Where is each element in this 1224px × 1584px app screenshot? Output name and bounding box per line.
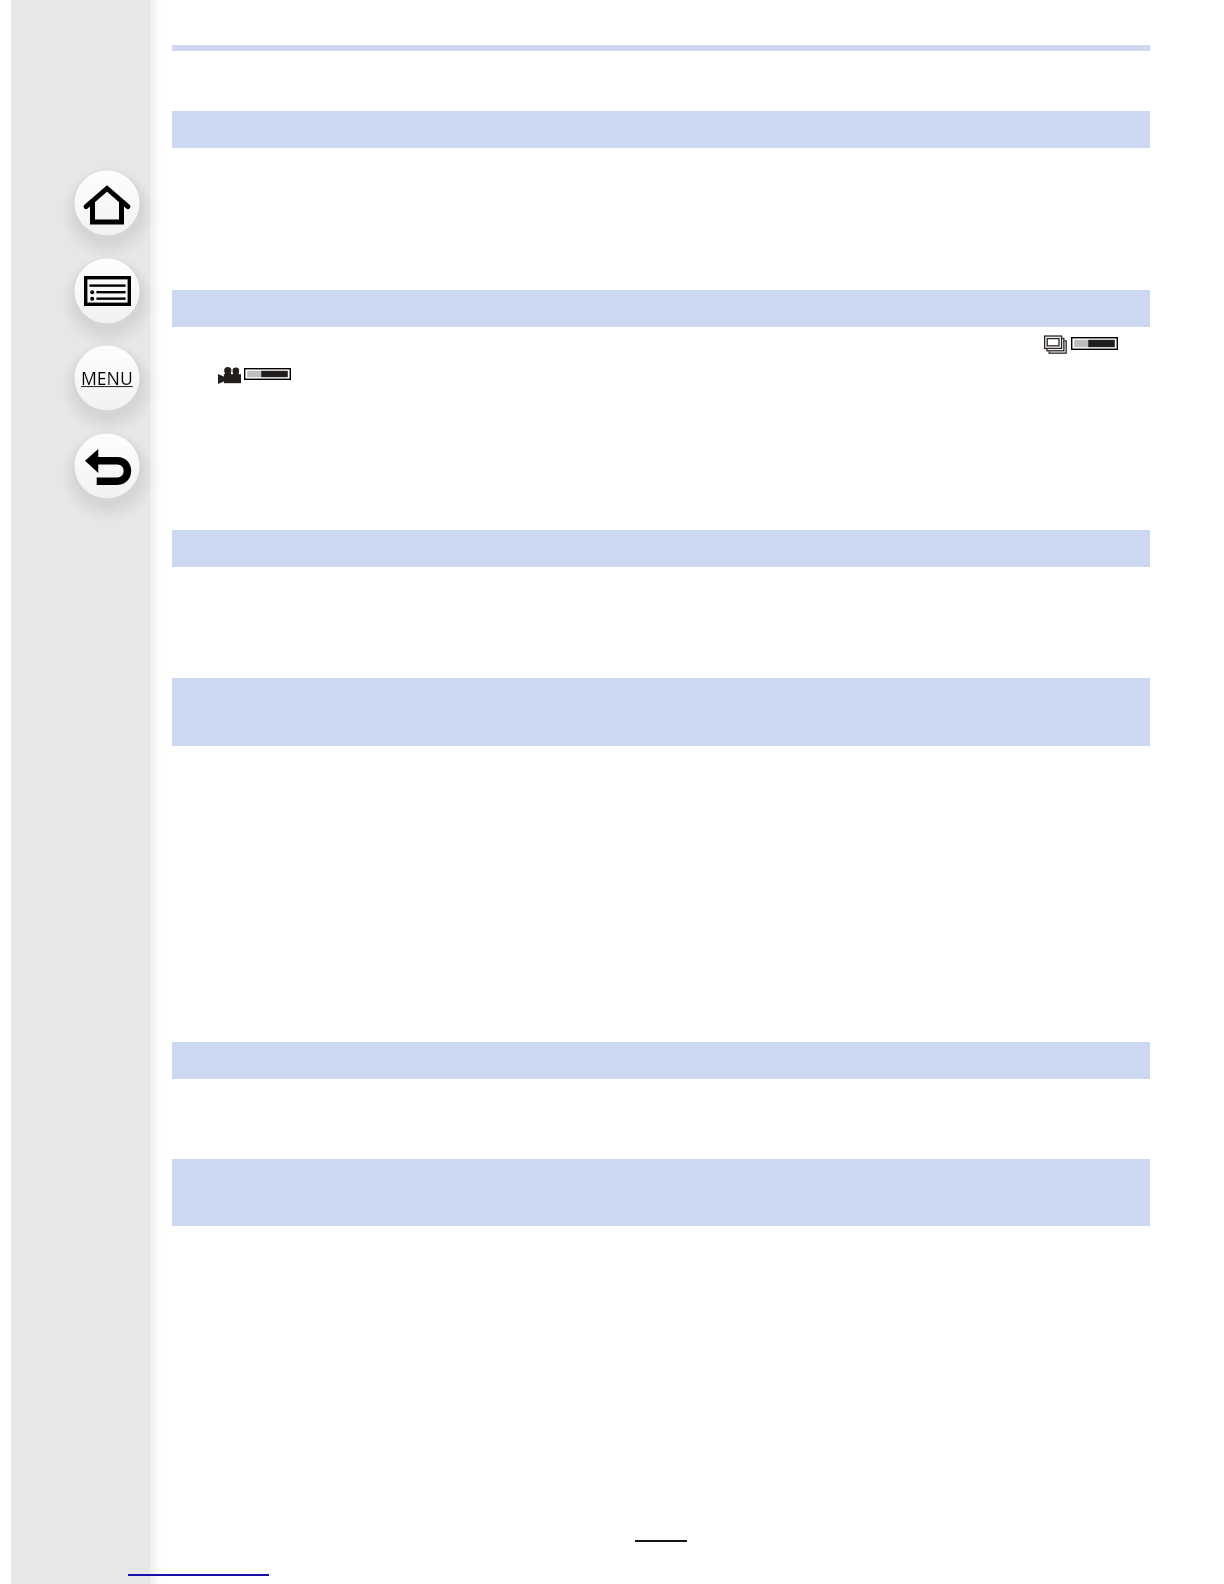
button[interactable]: Home <box>61 157 153 249</box>
button[interactable]: Back <box>61 420 153 512</box>
button[interactable]: Menu <box>61 332 153 424</box>
staticText: MENU <box>81 366 133 390</box>
button[interactable]: Contents <box>61 245 153 337</box>
